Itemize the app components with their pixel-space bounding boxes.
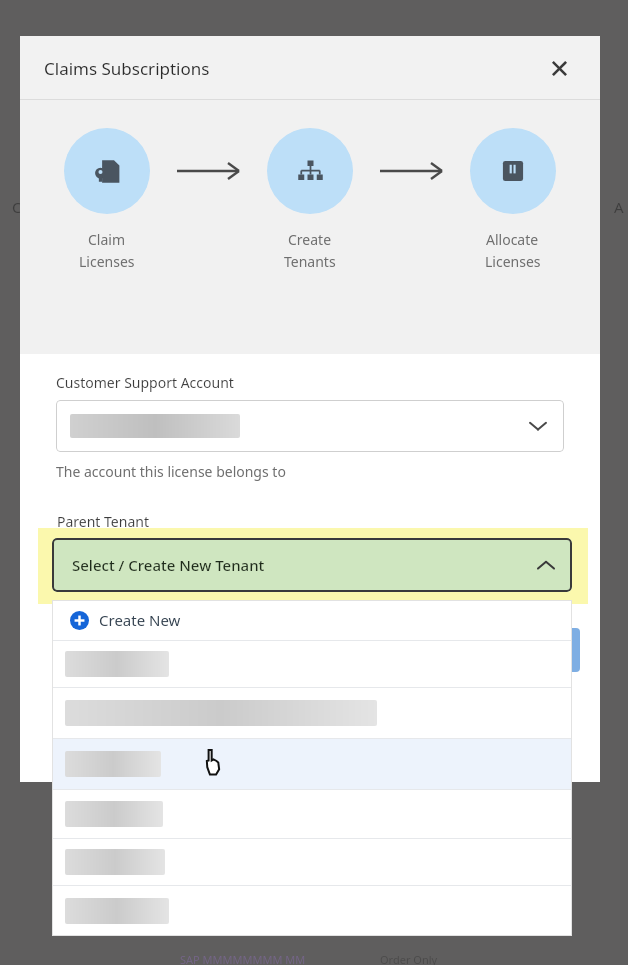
staticText: Licenses xyxy=(79,252,135,271)
staticText: C xyxy=(12,197,22,217)
button[interactable]: Tenant option xyxy=(52,739,572,789)
button[interactable]: Next xyxy=(490,628,580,672)
staticText: Create New xyxy=(99,610,181,630)
staticText: A xyxy=(614,197,624,217)
button[interactable]: Tenant option xyxy=(52,688,572,738)
button[interactable]: Close xyxy=(542,51,576,85)
staticText: The account this license belongs to xyxy=(56,462,286,481)
button[interactable]: Tenant option xyxy=(52,641,572,687)
staticText: Customer Support Account xyxy=(56,373,234,392)
staticText: Create xyxy=(288,230,332,249)
staticText: Select / Create New Tenant xyxy=(72,555,265,575)
staticText: Order Only xyxy=(380,952,438,965)
button[interactable]: Tenant option xyxy=(52,839,572,885)
button[interactable]: Tenant option xyxy=(52,790,572,838)
staticText: Licenses xyxy=(485,252,541,271)
staticText: SAP MMMMMMMM MM xyxy=(180,952,306,965)
button[interactable]: Tenant option xyxy=(52,886,572,936)
staticText: Claim xyxy=(88,230,126,249)
staticText: Claims Subscriptions xyxy=(44,57,210,80)
staticText: Parent Tenant xyxy=(57,512,149,531)
staticText: Allocate xyxy=(486,230,539,249)
button[interactable]: Select / Create New Tenant xyxy=(52,538,572,592)
button[interactable]: Create New xyxy=(52,600,572,640)
staticText: Tenants xyxy=(284,252,336,271)
button[interactable]: Customer Support Account xyxy=(56,400,564,452)
